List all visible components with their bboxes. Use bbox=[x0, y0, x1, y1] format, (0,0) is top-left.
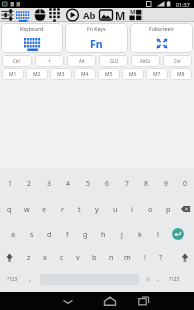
button[interactable]: Keyboard bbox=[1, 23, 63, 53]
button[interactable]: h bbox=[95, 223, 112, 245]
button[interactable]: GUI bbox=[99, 55, 128, 67]
staticText: M4 bbox=[81, 71, 89, 78]
button[interactable]: M5 bbox=[98, 68, 120, 80]
button[interactable]: 0 bbox=[176, 173, 193, 193]
staticText: p bbox=[166, 204, 171, 214]
button[interactable]: 9 bbox=[157, 173, 174, 193]
button[interactable]: o bbox=[142, 198, 158, 220]
button[interactable] bbox=[170, 223, 187, 245]
button[interactable] bbox=[177, 246, 194, 268]
button[interactable]: t bbox=[71, 198, 87, 220]
staticText: M bbox=[130, 8, 136, 15]
staticText: e bbox=[42, 204, 47, 214]
staticText: M8 bbox=[177, 71, 185, 78]
button[interactable]: x bbox=[37, 246, 52, 268]
button[interactable]: n bbox=[104, 246, 119, 268]
button[interactable]: v bbox=[70, 246, 85, 268]
button[interactable]: y bbox=[89, 198, 105, 220]
button[interactable]: f bbox=[59, 223, 76, 245]
button[interactable]: ?123 bbox=[1, 268, 23, 290]
staticText: Fn Keys bbox=[87, 25, 106, 32]
button[interactable]: M bbox=[114, 8, 126, 22]
staticText: v bbox=[76, 252, 80, 262]
button[interactable]: M1 bbox=[2, 68, 24, 80]
button[interactable] bbox=[39, 268, 140, 290]
button[interactable]: 5 bbox=[79, 173, 96, 193]
button[interactable]: ↑ bbox=[35, 55, 64, 67]
button[interactable]: k bbox=[131, 223, 148, 245]
button[interactable]: q bbox=[1, 198, 17, 220]
button[interactable] bbox=[48, 8, 62, 22]
button[interactable] bbox=[128, 8, 142, 22]
button[interactable]: i bbox=[124, 198, 140, 220]
button[interactable]: r bbox=[54, 198, 70, 220]
button[interactable]: M6 bbox=[122, 68, 144, 80]
button[interactable]: 6 bbox=[98, 173, 115, 193]
button[interactable]: Fn Keys bbox=[65, 23, 128, 53]
button[interactable]: M8 bbox=[170, 68, 192, 80]
button[interactable]: b bbox=[87, 246, 102, 268]
button[interactable] bbox=[16, 8, 30, 22]
staticText: o bbox=[148, 204, 153, 214]
button[interactable]: e bbox=[36, 198, 52, 220]
button[interactable]: 1 bbox=[1, 173, 18, 193]
button[interactable]: AltGr bbox=[131, 55, 160, 67]
staticText: j bbox=[121, 229, 123, 239]
button[interactable]: , bbox=[23, 268, 37, 290]
staticText: 01:37 bbox=[176, 1, 190, 8]
button[interactable]: 8 bbox=[137, 173, 154, 193]
button[interactable]: l bbox=[149, 223, 166, 245]
staticText: M7 bbox=[153, 71, 161, 78]
button[interactable]: z bbox=[21, 246, 36, 268]
button[interactable]: s bbox=[23, 223, 40, 245]
button[interactable]: c bbox=[54, 246, 69, 268]
button[interactable]: 4 bbox=[59, 173, 76, 193]
staticText: 3 bbox=[47, 179, 51, 188]
button[interactable] bbox=[0, 8, 14, 22]
button[interactable]: 2 bbox=[20, 173, 37, 193]
staticText: , bbox=[29, 274, 31, 284]
button[interactable]: ? bbox=[153, 246, 168, 268]
button[interactable]: M7 bbox=[146, 68, 168, 80]
staticText: M6 bbox=[129, 71, 137, 78]
button[interactable] bbox=[1, 246, 18, 268]
button[interactable]: ?123 bbox=[163, 268, 185, 290]
button[interactable]: M2 bbox=[26, 68, 48, 80]
button[interactable]: M4 bbox=[74, 68, 96, 80]
button[interactable]: g bbox=[77, 223, 94, 245]
staticText: s bbox=[30, 229, 34, 239]
staticText: r bbox=[61, 204, 64, 214]
staticText: Ab bbox=[83, 9, 96, 22]
button[interactable]: j bbox=[113, 223, 130, 245]
button[interactable] bbox=[58, 292, 78, 310]
staticText: 7 bbox=[125, 179, 129, 188]
button[interactable]: u bbox=[107, 198, 123, 220]
button[interactable] bbox=[100, 292, 120, 310]
button[interactable]: 7 bbox=[118, 173, 135, 193]
button[interactable] bbox=[134, 292, 154, 310]
staticText: M2 bbox=[33, 71, 41, 78]
staticText: ? bbox=[159, 252, 163, 262]
button[interactable] bbox=[99, 8, 113, 22]
button[interactable]: Fullscreen bbox=[130, 23, 193, 53]
button[interactable]: Alt bbox=[67, 55, 96, 67]
staticText: t bbox=[78, 204, 81, 214]
button[interactable]: 3 bbox=[40, 173, 57, 193]
button[interactable]: M3 bbox=[50, 68, 72, 80]
button[interactable]: p bbox=[160, 198, 176, 220]
staticText: d bbox=[47, 229, 52, 239]
button[interactable]: . bbox=[152, 268, 164, 290]
button[interactable] bbox=[66, 8, 80, 22]
button[interactable]: m bbox=[120, 246, 135, 268]
button[interactable]: ! bbox=[137, 246, 152, 268]
button[interactable]: Ctrl bbox=[2, 55, 32, 67]
button[interactable]: w bbox=[19, 198, 35, 220]
button[interactable] bbox=[33, 8, 47, 22]
staticText: k bbox=[138, 229, 142, 239]
button[interactable]: Ctx bbox=[163, 55, 192, 67]
button[interactable]: Ab bbox=[81, 8, 97, 22]
button[interactable]: d bbox=[41, 223, 58, 245]
button[interactable] bbox=[177, 198, 194, 220]
button[interactable]: a bbox=[5, 223, 22, 245]
button[interactable]: :-) bbox=[140, 268, 155, 290]
